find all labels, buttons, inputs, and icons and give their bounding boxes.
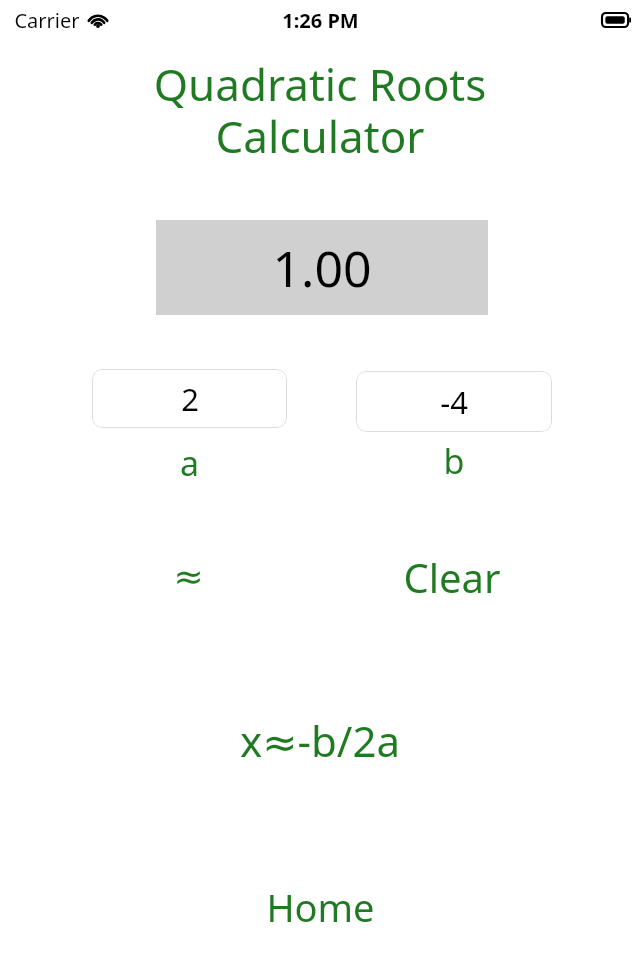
staticText: x≈-b/2a — [0, 712, 640, 769]
staticText: ≈ — [173, 556, 204, 598]
button[interactable]: Clear — [382, 546, 522, 608]
button[interactable]: Calculate approximate roots — [118, 548, 258, 606]
staticText: 2 — [181, 378, 199, 420]
staticText: b — [356, 438, 552, 484]
staticText: a — [92, 440, 287, 486]
staticText: 1.00 — [272, 234, 372, 302]
staticText: Quadratic Roots Calculator — [0, 54, 640, 166]
button[interactable]: -4 — [356, 371, 552, 432]
staticText: Carrier — [14, 7, 80, 34]
staticText: 1:26 PM — [282, 7, 359, 34]
button[interactable]: Home — [250, 878, 390, 936]
button[interactable]: 2 — [92, 369, 287, 428]
staticText: -4 — [440, 381, 468, 423]
staticText: Home — [266, 881, 375, 933]
staticText: Clear — [403, 550, 501, 604]
